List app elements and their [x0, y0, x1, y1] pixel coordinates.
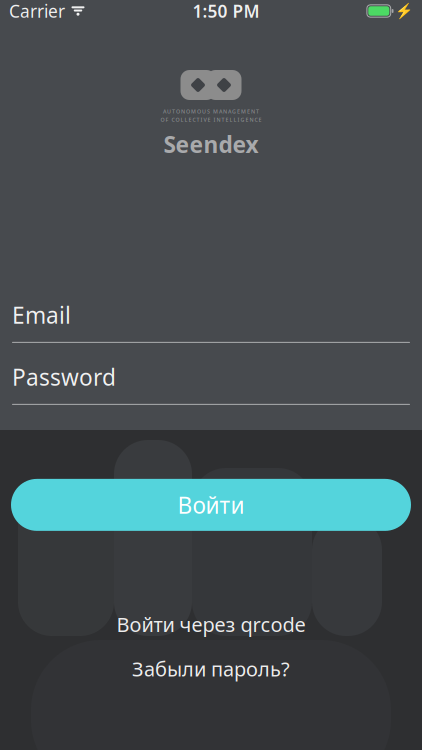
staticText: ⚡	[395, 3, 413, 19]
staticText: O F C O L L E C T I V E I N T E L L I G …	[160, 116, 261, 123]
staticText: 1:50 PM	[192, 0, 259, 22]
staticText: A U T O N O M O U S M A N A G E M E N T	[163, 108, 259, 115]
button[interactable]: Войти через qrcode	[102, 605, 319, 643]
staticText: Password	[12, 362, 116, 392]
staticText: Carrier	[9, 0, 65, 22]
staticText: Войти через qrcode	[116, 611, 305, 637]
staticText: Забыли пароль?	[132, 655, 290, 682]
staticText: Email	[12, 300, 71, 330]
staticText: Войти	[177, 490, 244, 520]
button[interactable]: Забыли пароль?	[118, 649, 304, 688]
staticText: Seendex	[163, 129, 258, 159]
button[interactable]: Войти	[11, 479, 411, 531]
